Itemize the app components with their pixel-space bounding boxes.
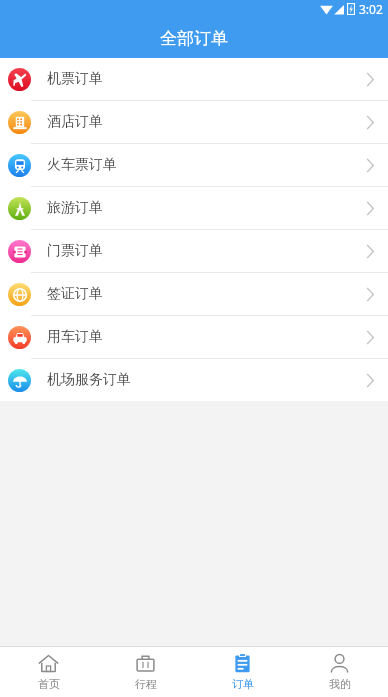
staticText: 签证订单 [47, 285, 103, 303]
button[interactable]: 旅游订单 [0, 187, 388, 229]
button[interactable]: 签证订单 [0, 273, 388, 315]
staticText: 全部订单 [160, 28, 228, 49]
button[interactable]: 机票订单 [0, 58, 388, 100]
staticText: 我的 [329, 677, 351, 691]
button[interactable]: 火车票订单 [0, 144, 388, 186]
button[interactable]: 酒店订单 [0, 101, 388, 143]
button[interactable]: 首页 [0, 647, 97, 697]
button[interactable]: 行程 [97, 647, 194, 697]
button[interactable]: 门票订单 [0, 230, 388, 272]
staticText: 酒店订单 [47, 113, 103, 131]
button[interactable]: 我的 [291, 647, 388, 697]
staticText: 3:02 [359, 1, 383, 17]
staticText: 火车票订单 [47, 156, 117, 174]
staticText: 旅游订单 [47, 199, 103, 217]
button[interactable]: 订单 [194, 647, 291, 697]
button[interactable]: 机场服务订单 [0, 359, 388, 401]
staticText: 订单 [232, 677, 254, 691]
staticText: 机场服务订单 [47, 371, 131, 389]
staticText: 门票订单 [47, 242, 103, 260]
staticText: 机票订单 [47, 70, 103, 88]
staticText: 用车订单 [47, 328, 103, 346]
button[interactable]: 用车订单 [0, 316, 388, 358]
staticText: 行程 [135, 677, 157, 691]
staticText: 首页 [38, 677, 60, 691]
